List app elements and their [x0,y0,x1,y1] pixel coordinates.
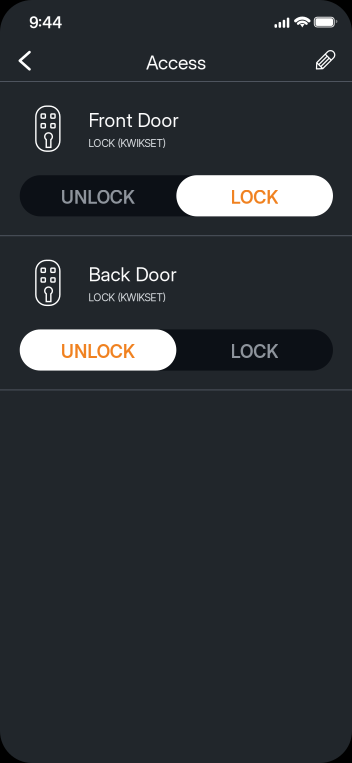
button[interactable]: UNLOCK [20,329,176,371]
button[interactable]: UNLOCK [20,175,176,216]
staticText: Access [146,51,206,74]
staticText: UNLOCK [61,186,135,208]
button[interactable]: Edit [302,45,352,80]
button[interactable]: Back [0,46,45,79]
staticText: LOCK (KWIKSET) [89,291,166,304]
button[interactable]: LOCK [176,175,333,216]
staticText: UNLOCK [61,340,135,362]
staticText: LOCK [231,186,278,208]
staticText: Back Door [89,262,177,286]
staticText: LOCK [231,340,278,362]
staticText: 9:44 [29,13,62,32]
staticText: LOCK (KWIKSET) [89,137,166,149]
staticText: Front Door [89,108,179,132]
button[interactable]: LOCK [176,329,333,371]
